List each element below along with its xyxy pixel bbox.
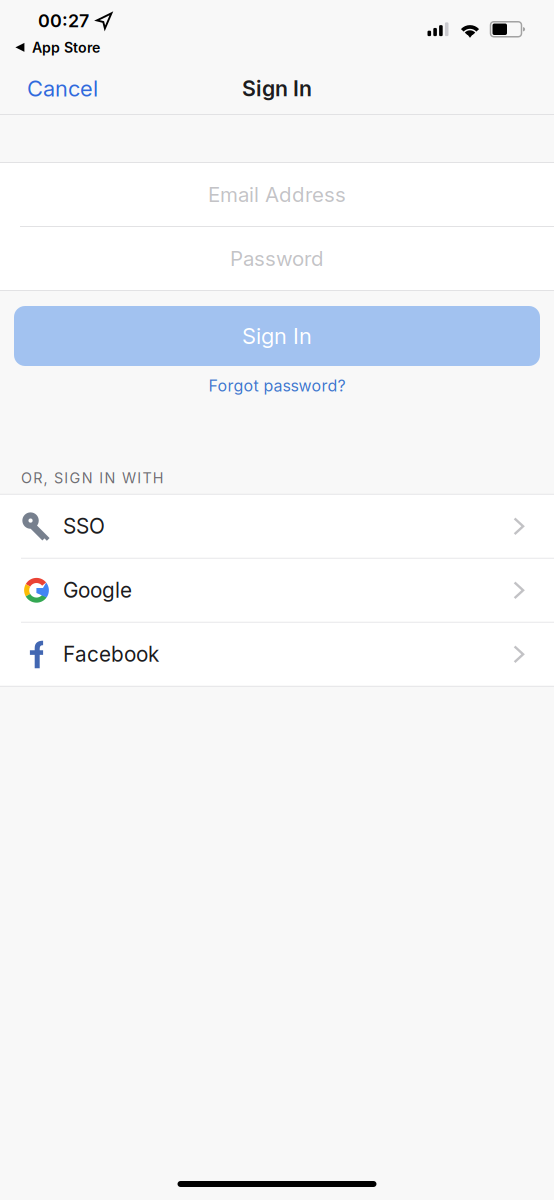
button[interactable]: Email Address (0, 163, 554, 226)
staticText: OR, SIGN IN WITH (21, 469, 164, 487)
staticText: App Store (32, 39, 100, 56)
button[interactable]: Cancel (0, 58, 116, 114)
button[interactable]: App Store (7, 36, 108, 59)
staticText: Sign In (242, 323, 312, 349)
button[interactable]: Google (0, 559, 554, 623)
button[interactable]: Forgot password? (194, 371, 359, 400)
button[interactable]: Password (0, 227, 554, 290)
button[interactable]: Facebook (0, 623, 554, 687)
staticText: Sign In (242, 76, 312, 101)
staticText: Facebook (63, 642, 159, 667)
staticText: SSO (63, 514, 105, 539)
button[interactable]: SSO (0, 495, 554, 559)
button[interactable]: Sign In (14, 306, 540, 366)
staticText: Forgot password? (208, 376, 345, 395)
staticText: Google (63, 578, 132, 603)
staticText: Cancel (27, 75, 98, 102)
staticText: Password (230, 246, 324, 271)
staticText: Email Address (208, 182, 346, 207)
staticText: 00:27 (38, 10, 89, 32)
